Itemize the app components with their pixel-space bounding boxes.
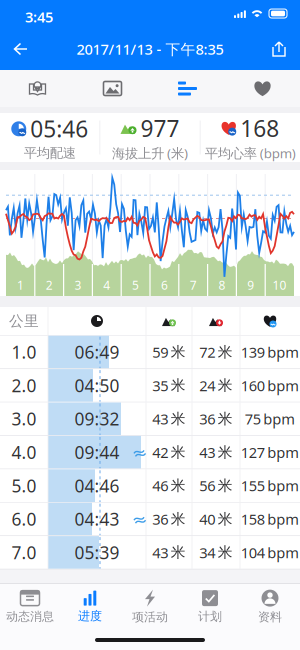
staticText: 3:45: [25, 7, 53, 26]
staticText: 米: [171, 376, 186, 394]
staticText: bpm: [267, 342, 299, 362]
staticText: 155: [241, 476, 265, 495]
staticText: 43: [199, 442, 215, 462]
staticText: 海拔上升 (米): [112, 144, 188, 162]
button[interactable]: Back: [0, 28, 42, 70]
button[interactable]: 动态消息: [0, 584, 60, 630]
staticText: 43: [152, 409, 168, 429]
staticText: 米: [218, 477, 233, 495]
staticText: 36: [152, 509, 168, 529]
staticText: 项活动: [132, 610, 168, 624]
staticText: 1: [17, 277, 24, 293]
button[interactable]: Map: [0, 70, 75, 107]
staticText: 04:43: [74, 507, 119, 530]
staticText: 46: [152, 476, 168, 495]
staticText: 平均心率 (bpm): [205, 144, 296, 162]
staticText: 8: [218, 277, 225, 293]
staticText: 05:39: [74, 541, 119, 564]
staticText: 6: [161, 277, 168, 293]
staticText: 139: [241, 342, 265, 362]
staticText: 36: [199, 409, 215, 429]
staticText: 2: [46, 277, 53, 293]
staticText: 米: [218, 343, 233, 361]
button[interactable]: 项活动: [120, 584, 180, 630]
staticText: 04:50: [74, 374, 119, 397]
staticText: bpm: [267, 509, 299, 529]
staticText: 168: [240, 113, 279, 143]
staticText: 6.0: [11, 507, 36, 530]
staticText: 4.0: [11, 441, 36, 464]
staticText: 09:32: [74, 407, 119, 430]
staticText: 160: [241, 376, 265, 395]
staticText: 米: [171, 410, 186, 428]
staticText: 3.0: [11, 407, 36, 430]
staticText: 3: [74, 277, 81, 293]
staticText: 42: [152, 442, 168, 462]
button[interactable]: Share: [258, 28, 300, 70]
staticText: 公里: [9, 312, 39, 330]
staticText: bpm: [267, 543, 299, 562]
staticText: 米: [218, 543, 233, 561]
staticText: 977: [140, 113, 179, 143]
staticText: 104: [241, 543, 265, 562]
staticText: 72: [199, 342, 215, 362]
button[interactable]: Splits: [150, 70, 225, 107]
staticText: bpm: [263, 409, 295, 429]
staticText: 资料: [258, 610, 282, 624]
button[interactable]: Heart rate: [225, 70, 300, 107]
staticText: 127: [241, 442, 265, 462]
staticText: bpm: [267, 376, 299, 395]
staticText: 59: [152, 342, 168, 362]
staticText: 9: [247, 277, 254, 293]
staticText: 平均配速: [24, 145, 76, 161]
staticText: 5.0: [11, 474, 36, 497]
staticText: 43: [152, 543, 168, 562]
staticText: 35: [152, 376, 168, 395]
staticText: 24: [199, 376, 215, 395]
staticText: 米: [218, 443, 233, 461]
staticText: 米: [171, 443, 186, 461]
staticText: 2.0: [11, 374, 36, 397]
staticText: 计划: [198, 609, 222, 624]
button[interactable]: 计划: [180, 584, 240, 630]
staticText: 09:44: [74, 441, 119, 464]
staticText: bpm: [267, 442, 299, 462]
staticText: 动态消息: [6, 609, 54, 624]
staticText: 06:49: [74, 340, 119, 363]
button[interactable]: Photos: [75, 70, 150, 107]
staticText: 米: [218, 410, 233, 428]
staticText: 34: [199, 543, 215, 562]
staticText: 5: [132, 277, 139, 293]
button[interactable]: 资料: [240, 584, 300, 630]
staticText: 75: [245, 409, 261, 429]
staticText: 40: [199, 509, 215, 529]
staticText: 7.0: [11, 541, 36, 564]
staticText: 进度: [78, 609, 102, 623]
staticText: 158: [241, 509, 265, 529]
button[interactable]: 进度: [60, 584, 120, 630]
staticText: 米: [171, 343, 186, 361]
staticText: 56: [199, 476, 215, 495]
staticText: bpm: [267, 476, 299, 495]
staticText: 4: [103, 277, 110, 293]
staticText: 2017/11/13 - 下午8:35: [76, 39, 223, 59]
staticText: 米: [171, 510, 186, 528]
staticText: 米: [218, 376, 233, 394]
staticText: 米: [171, 543, 186, 561]
staticText: 7: [190, 277, 197, 293]
staticText: 1.0: [11, 340, 36, 363]
staticText: 米: [218, 510, 233, 528]
staticText: 04:46: [74, 474, 119, 497]
staticText: 05:46: [30, 114, 88, 144]
staticText: 10: [273, 277, 287, 293]
staticText: 米: [171, 477, 186, 495]
